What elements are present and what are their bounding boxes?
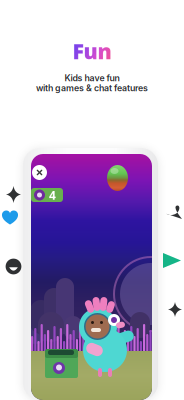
staticText: 4 [49,187,56,203]
staticText: with games & chat features [36,83,148,93]
button[interactable]: Close [32,165,47,180]
staticText: Kids have fun [64,73,119,83]
